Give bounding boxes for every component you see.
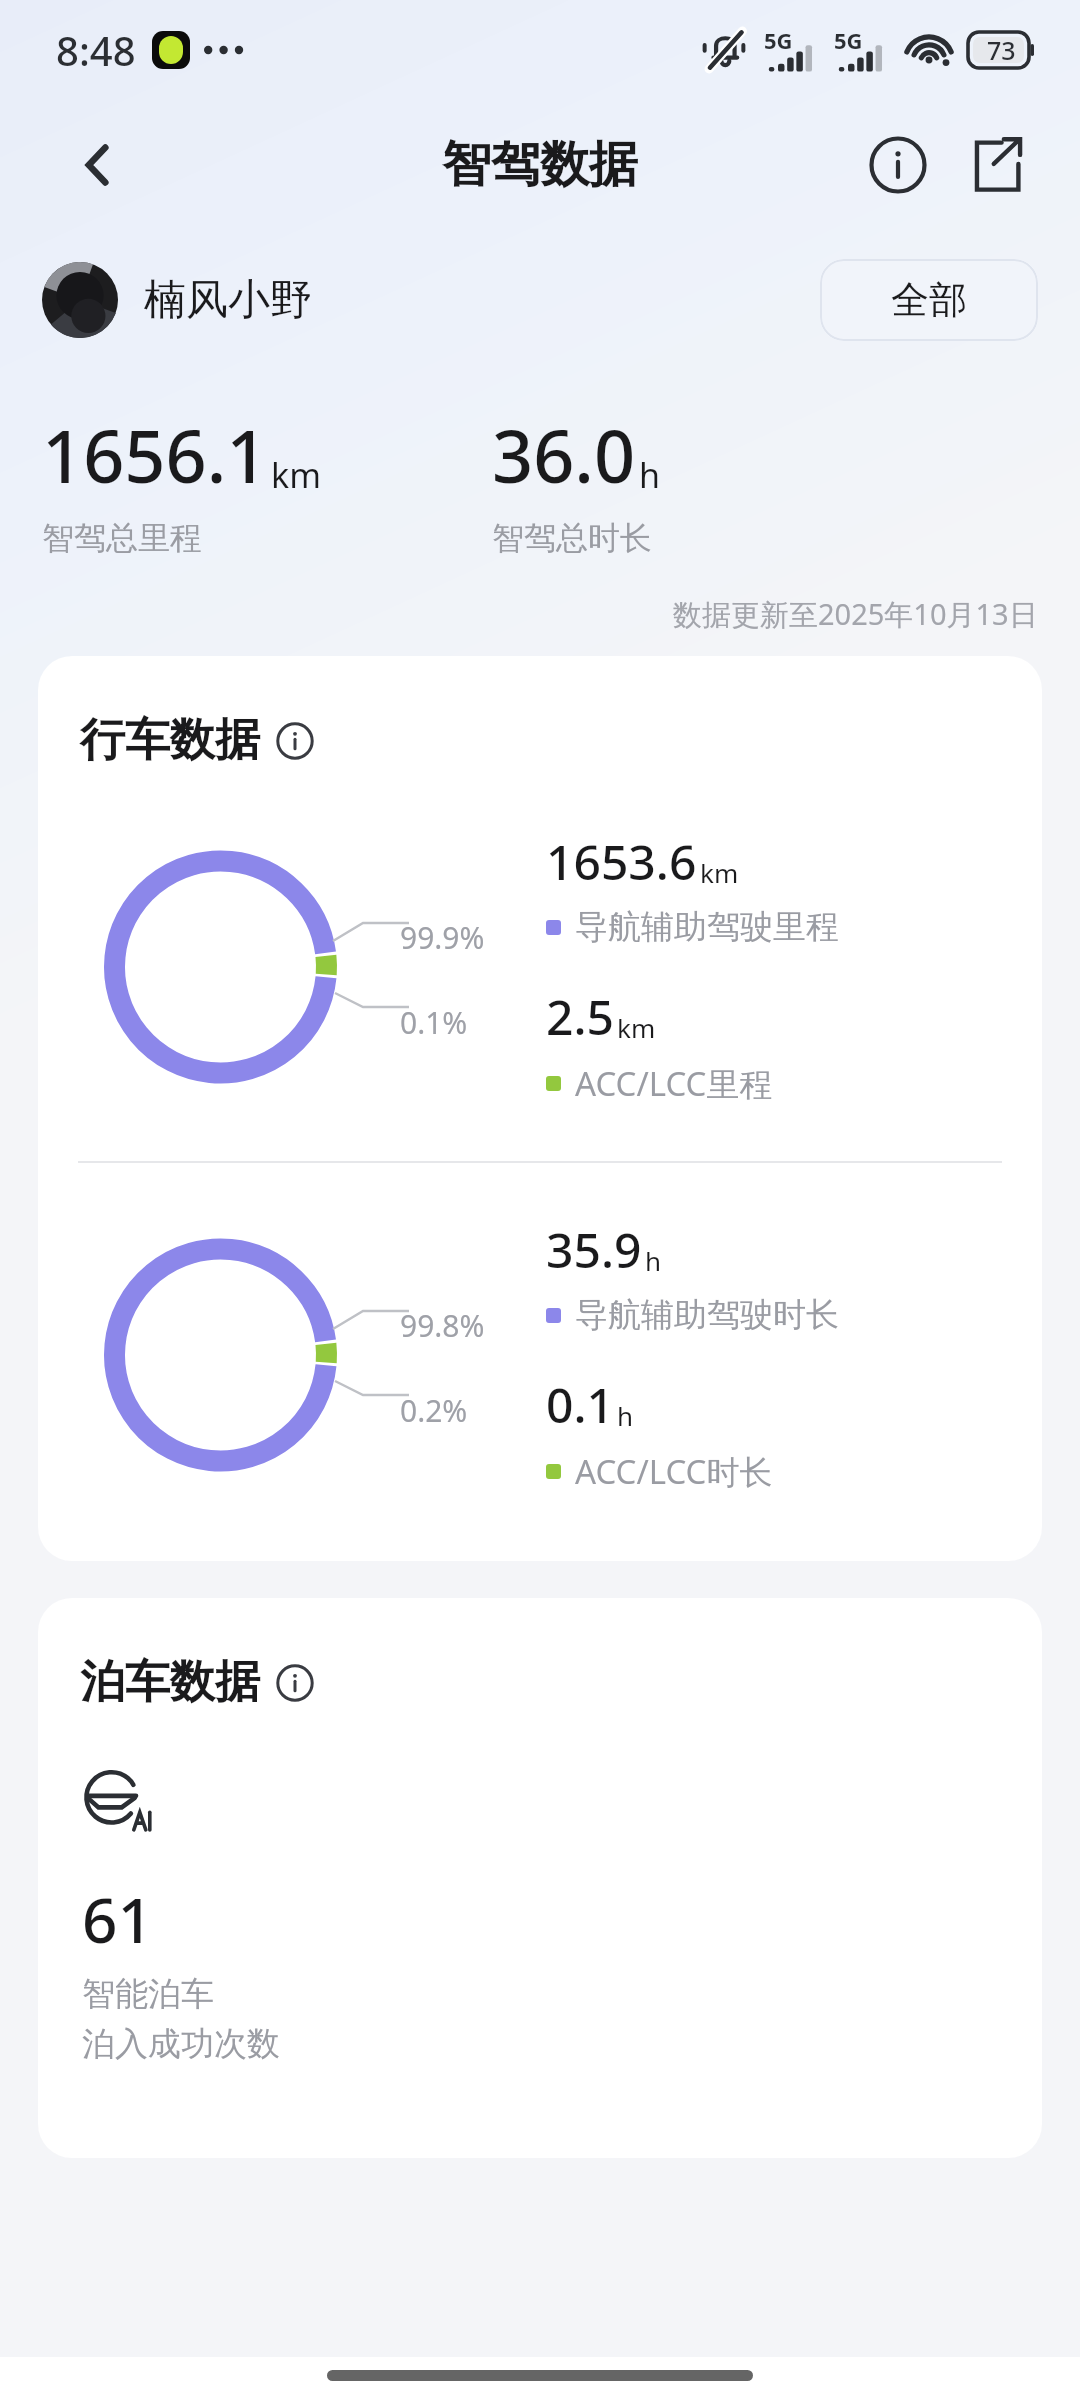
staticText: 1653.6	[546, 829, 697, 894]
staticText: 1656.1	[42, 406, 268, 504]
staticText: km	[617, 1010, 656, 1045]
staticText: ACC/LCC里程	[575, 1061, 773, 1106]
staticText: 导航辅助驾驶时长	[575, 1294, 839, 1336]
staticText: 泊车数据	[80, 1654, 260, 1711]
staticText: 8:48	[56, 23, 136, 77]
button[interactable]: 楠风小野	[42, 262, 312, 338]
staticText: 智驾总时长	[492, 518, 652, 558]
staticText: 0.1	[546, 1372, 614, 1437]
staticText: 5G	[764, 25, 793, 55]
staticText: 智驾数据	[442, 134, 638, 196]
staticText: 智驾总里程	[42, 518, 202, 558]
staticText: 数据更新至2025年10月13日	[673, 594, 1038, 634]
button[interactable]: Share	[958, 127, 1034, 203]
staticText: 0.2%	[400, 1390, 468, 1431]
staticText: 行车数据	[80, 712, 260, 769]
staticText: 全部	[891, 276, 967, 324]
button[interactable]: 行车数据	[80, 712, 314, 769]
staticText: ACC/LCC时长	[575, 1449, 773, 1494]
staticText: 99.8%	[400, 1305, 485, 1346]
staticText: h	[645, 1243, 662, 1278]
staticText: 泊入成功次数	[82, 2023, 280, 2065]
button[interactable]: Info	[860, 127, 936, 203]
button[interactable]: 全部	[820, 259, 1038, 341]
staticText: 36.0	[492, 406, 636, 504]
staticText: 2.5	[546, 984, 614, 1049]
staticText: 5G	[834, 25, 863, 55]
staticText: h	[639, 452, 661, 498]
staticText: 0.1%	[400, 1002, 468, 1043]
staticText: 楠风小野	[144, 274, 312, 327]
button[interactable]: 泊车数据	[80, 1654, 314, 1711]
staticText: 61	[82, 1877, 153, 1961]
staticText: 导航辅助驾驶里程	[575, 906, 839, 948]
staticText: 73	[987, 33, 1016, 67]
button[interactable]: Back	[60, 127, 136, 203]
staticText: 35.9	[546, 1217, 642, 1282]
staticText: km	[700, 855, 739, 890]
staticText: km	[271, 452, 321, 498]
staticText: 智能泊车	[82, 1973, 214, 2015]
staticText: 99.9%	[400, 917, 485, 958]
staticText: h	[617, 1398, 634, 1433]
